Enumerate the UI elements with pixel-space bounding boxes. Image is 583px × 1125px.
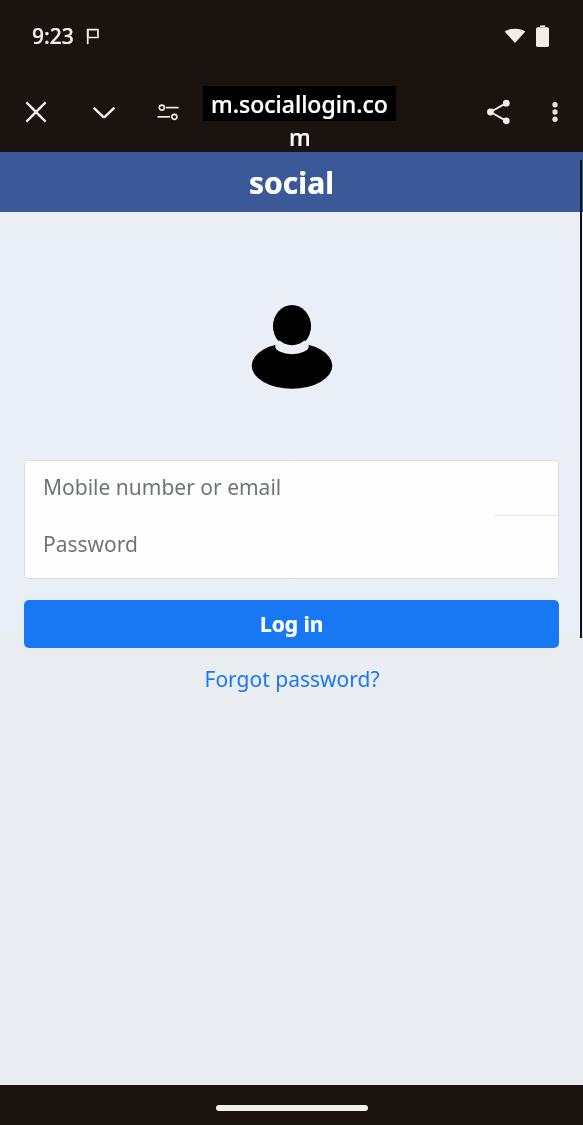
staticText: 9:23: [32, 22, 74, 51]
staticText: Mobile number or email: [43, 473, 282, 502]
button[interactable]: Forgot password?: [194, 661, 390, 698]
button[interactable]: Share: [475, 88, 523, 136]
staticText: social: [249, 162, 335, 203]
staticText: Log in: [260, 610, 324, 639]
button[interactable]: Close: [12, 88, 60, 136]
button[interactable]: More options: [531, 88, 579, 136]
button[interactable]: Collapse: [80, 88, 128, 136]
staticText: Forgot password?: [204, 665, 380, 694]
button[interactable]: Password: [24, 516, 559, 579]
staticText: m: [289, 121, 311, 152]
button[interactable]: m.sociallogin.co: [203, 86, 396, 152]
button[interactable]: Page info: [146, 90, 190, 134]
staticText: Password: [43, 530, 138, 559]
staticText: m.sociallogin.co: [211, 88, 388, 119]
button[interactable]: Log in: [24, 600, 559, 648]
button[interactable]: Mobile number or email: [24, 460, 559, 515]
